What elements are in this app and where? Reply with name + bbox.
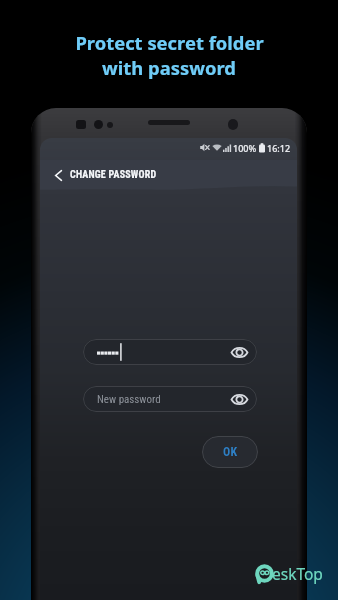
button[interactable]: OK xyxy=(202,436,258,468)
staticText: OK xyxy=(223,445,238,459)
staticText: 100% xyxy=(233,142,257,153)
button[interactable]: Show password xyxy=(83,339,257,365)
staticText: 16:12 xyxy=(267,142,291,153)
staticText: eskTop xyxy=(272,563,323,584)
staticText: Protect secret folder xyxy=(75,30,264,55)
button[interactable]: Show password xyxy=(231,346,248,359)
button[interactable]: New password xyxy=(83,386,257,412)
staticText: with password xyxy=(102,55,236,80)
staticText: CHANGE PASSWORD xyxy=(70,169,157,181)
staticText: New password xyxy=(97,393,161,406)
button[interactable]: Back xyxy=(48,165,68,185)
button[interactable]: Show password xyxy=(231,393,248,406)
